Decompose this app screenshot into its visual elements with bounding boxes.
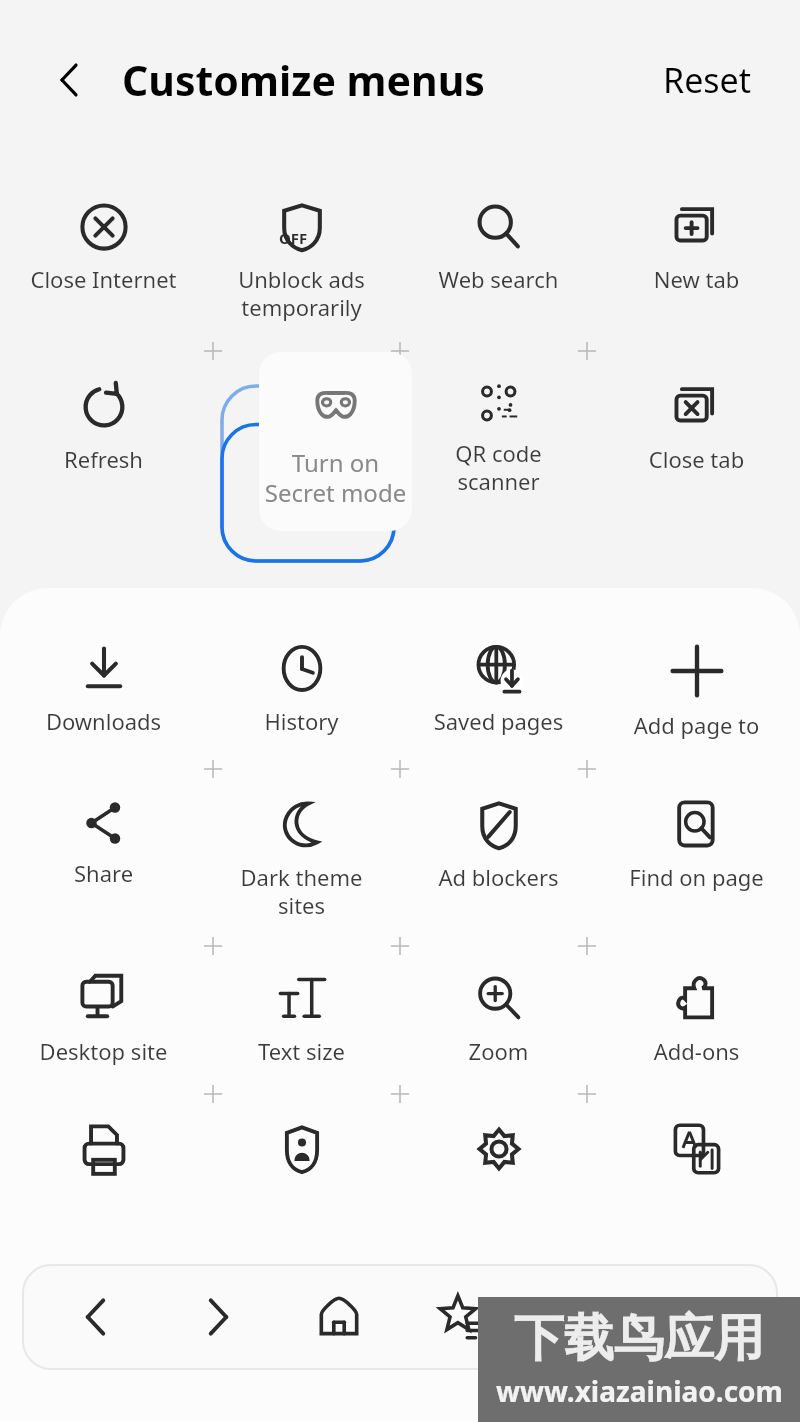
button[interactable]: New tab	[603, 200, 790, 294]
button[interactable]: Saved pages	[405, 642, 592, 736]
staticText: Unblock ads temporarily	[208, 264, 395, 322]
staticText: Ad blockers	[405, 862, 592, 892]
staticText: Refresh	[10, 444, 197, 474]
staticText: 下载鸟应用	[514, 1307, 764, 1370]
button[interactable]: Turn on Secret mode	[259, 352, 412, 531]
staticText: Web search	[405, 264, 592, 294]
button[interactable]: Menu	[656, 1269, 752, 1365]
staticText: QR code scanner	[405, 438, 592, 496]
staticText: Saved pages	[405, 706, 592, 736]
staticText: History	[208, 706, 395, 736]
button[interactable]: Find on page	[603, 798, 790, 892]
button[interactable]: Forward	[170, 1269, 266, 1365]
button[interactable]: Share	[10, 798, 197, 888]
button[interactable]	[208, 1122, 395, 1216]
staticText: OFF	[279, 228, 308, 248]
staticText: Turn on Secret mode	[259, 446, 412, 509]
button[interactable]: Refresh	[10, 380, 197, 474]
button[interactable]: Reset	[655, 49, 760, 111]
staticText: Desktop site	[10, 1036, 197, 1066]
staticText: Text size	[208, 1036, 395, 1066]
staticText: Add page to	[603, 710, 790, 740]
staticText: Close Internet	[10, 264, 197, 294]
button[interactable]: Downloads	[10, 642, 197, 736]
button[interactable]: Ad blockers	[405, 798, 592, 892]
button[interactable]: Back	[40, 51, 98, 109]
button[interactable]: Unblock ads temporarily	[208, 200, 395, 322]
staticText: Reset	[663, 57, 752, 103]
button[interactable]: Back	[48, 1269, 144, 1365]
button[interactable]: History	[208, 642, 395, 736]
button[interactable]: QR code scanner	[405, 380, 592, 496]
button[interactable]: Close tab	[603, 380, 790, 474]
staticText: Close tab	[603, 444, 790, 474]
staticText: Find on page	[603, 862, 790, 892]
button[interactable]: Web search	[405, 200, 592, 294]
button[interactable]: Desktop site	[10, 972, 197, 1066]
staticText: Dark theme sites	[208, 862, 395, 920]
button[interactable]: Home	[291, 1269, 387, 1365]
button[interactable]: Text size	[208, 972, 395, 1066]
button[interactable]: Close Internet	[10, 200, 197, 294]
button[interactable]: Dark theme sites	[208, 798, 395, 920]
staticText: Share	[10, 858, 197, 888]
staticText: Downloads	[10, 706, 197, 736]
staticText: Customize menus	[122, 52, 485, 108]
button[interactable]	[603, 1122, 790, 1216]
staticText: www.xiazainiao.com	[496, 1372, 783, 1410]
button[interactable]: Zoom	[405, 972, 592, 1066]
staticText: Zoom	[405, 1036, 592, 1066]
button[interactable]: Bookmarks	[413, 1269, 509, 1365]
button[interactable]: Add-ons	[603, 972, 790, 1066]
button[interactable]: Tabs	[534, 1269, 630, 1365]
button[interactable]: Add page to	[603, 642, 790, 740]
staticText: New tab	[603, 264, 790, 294]
button[interactable]	[405, 1122, 592, 1216]
staticText: Add-ons	[603, 1036, 790, 1066]
button[interactable]	[10, 1122, 197, 1216]
